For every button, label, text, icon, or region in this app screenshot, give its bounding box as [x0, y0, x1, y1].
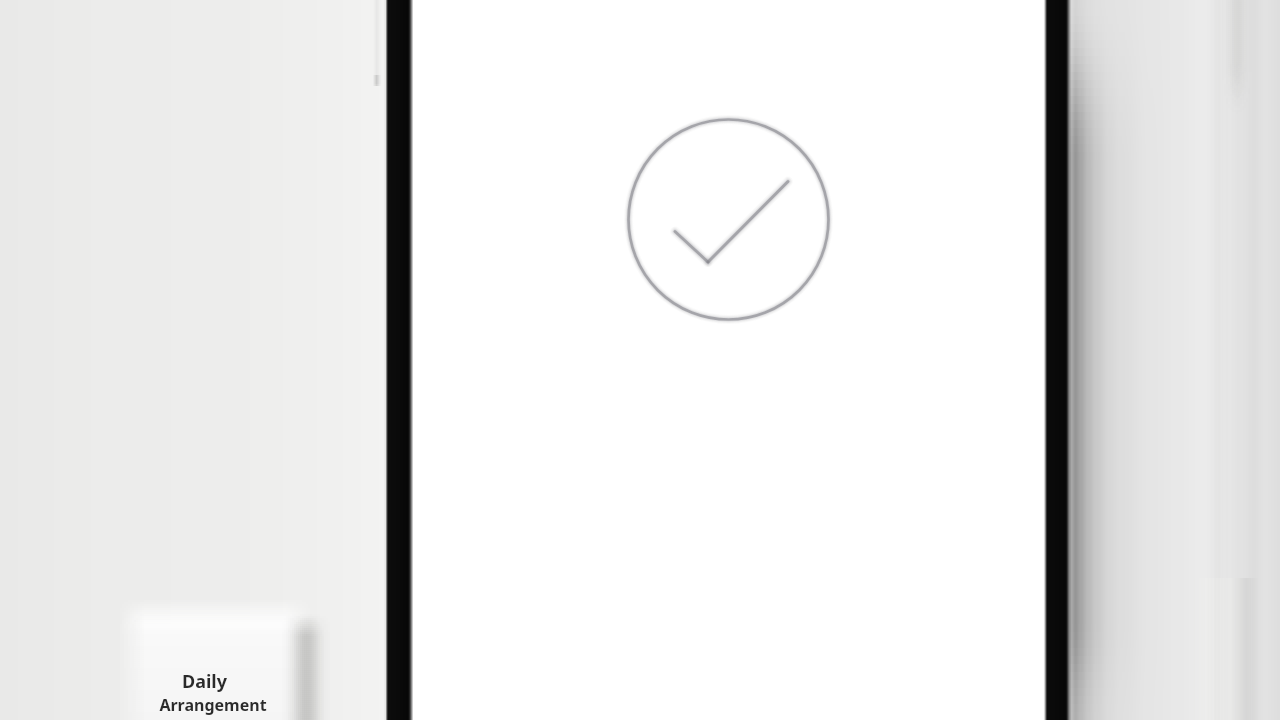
staticText: Arrangement — [159, 694, 267, 716]
button[interactable]: Daily — [131, 611, 297, 720]
button[interactable]: Success check mark — [626, 117, 832, 323]
staticText: Daily — [182, 669, 227, 694]
